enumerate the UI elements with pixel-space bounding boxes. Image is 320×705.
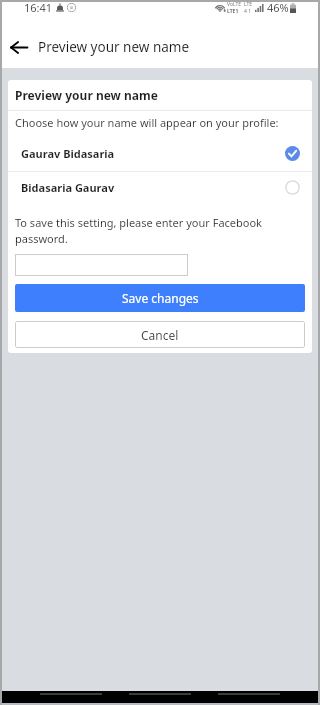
button[interactable]: Save changes: [15, 284, 305, 312]
staticText: To save this setting, please enter your …: [15, 215, 305, 247]
staticText: Cancel: [141, 327, 179, 343]
staticText: VoLTE: [227, 1, 242, 8]
staticText: 4 1: [244, 8, 252, 15]
staticText: Preview your new name: [38, 38, 190, 56]
button[interactable]: Back: [0, 25, 38, 68]
staticText: 16:41: [24, 0, 53, 15]
staticText: LTE1: [227, 8, 239, 15]
button[interactable]: Cancel: [15, 321, 305, 348]
button[interactable]: Gaurav Bidasaria: [8, 136, 312, 171]
staticText: Choose how your name will appear on your…: [15, 115, 279, 130]
button[interactable]: [15, 254, 188, 276]
button[interactable]: Navigation button: [218, 693, 280, 703]
staticText: Bidasaria Gaurav: [21, 180, 115, 195]
button[interactable]: Navigation button: [40, 693, 102, 703]
button[interactable]: Navigation button: [129, 693, 191, 703]
staticText: Preview your new name: [15, 87, 158, 103]
staticText: LTE: [244, 1, 253, 8]
staticText: Gaurav Bidasaria: [21, 146, 115, 161]
staticText: 46%: [267, 0, 289, 15]
staticText: Save changes: [122, 290, 199, 306]
button[interactable]: Bidasaria Gaurav: [8, 172, 312, 203]
